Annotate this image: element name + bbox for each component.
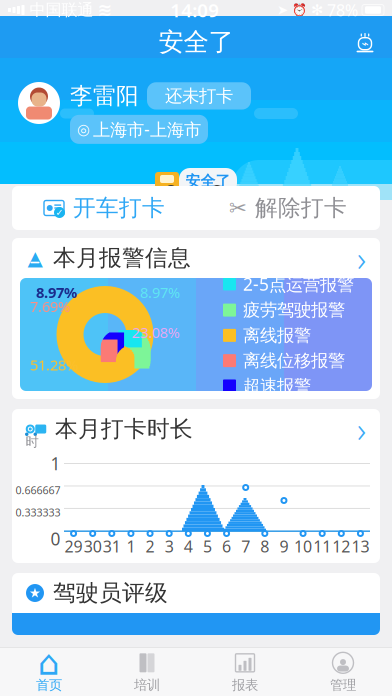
staticText: 驾驶员评级 [53, 579, 168, 607]
staticText: ⌂ [38, 643, 60, 682]
staticText: 0.333333 [15, 505, 60, 519]
staticText: 上海市-上海市 [93, 118, 201, 141]
staticText: 管理 [330, 677, 356, 693]
staticText: 0.666667 [15, 483, 60, 497]
staticText: 8 [260, 536, 269, 557]
staticText: 10 [294, 536, 312, 557]
staticText: ✓ [55, 207, 63, 218]
staticText: 2 [146, 536, 155, 557]
staticText: 14:09 [170, 0, 219, 22]
button[interactable]: ✂ [196, 186, 380, 230]
staticText: ◎ [77, 121, 90, 138]
staticText: 8.97% [140, 282, 180, 302]
staticText: 13 [351, 536, 369, 557]
button[interactable]: ✓ [12, 186, 196, 230]
staticText: › [357, 235, 366, 281]
staticText: ⌁ [361, 37, 368, 50]
staticText: 5 [203, 536, 212, 557]
staticText: 安全了 [185, 172, 230, 190]
staticText: 中国联通 [29, 0, 93, 20]
staticText: 解除打卡 [255, 194, 347, 222]
staticText: 报表 [232, 677, 258, 693]
staticText: 时 [25, 434, 38, 450]
button[interactable]: 管理 [294, 648, 392, 696]
staticText: 疲劳驾驶报警 [243, 299, 345, 321]
staticText: › [357, 406, 366, 452]
staticText: 开车打卡 [73, 194, 165, 222]
staticText: 4 [184, 536, 193, 557]
staticText: 11 [313, 536, 331, 557]
staticText: ➤ [277, 2, 288, 17]
button[interactable]: 报表 [196, 648, 294, 696]
staticText: ✻ [311, 2, 323, 18]
staticText: 3 [165, 536, 174, 557]
staticText: 8.97% [36, 282, 77, 302]
staticText: 7.69% [30, 296, 70, 316]
staticText: 51.28% [30, 355, 78, 374]
staticText: 31 [103, 536, 121, 557]
staticText: 本月报警信息 [53, 244, 191, 272]
staticText: 2-5点运营报警 [243, 272, 354, 295]
staticText: 培训 [134, 677, 160, 693]
staticText: 78% [327, 0, 358, 21]
staticText: 6 [222, 536, 231, 557]
staticText: 12 [332, 536, 350, 557]
staticText: 29 [65, 536, 83, 557]
button[interactable]: ▲ [12, 238, 380, 278]
staticText: 还未打卡 [165, 85, 233, 107]
staticText: 7 [241, 536, 250, 557]
staticText: 1 [126, 536, 135, 557]
button[interactable]: 本月打卡时长 [12, 409, 380, 449]
staticText: ✂ [229, 196, 247, 220]
button[interactable]: 培训 [98, 648, 196, 696]
staticText: 23.08% [132, 322, 180, 342]
button[interactable]: ★ [12, 573, 380, 613]
staticText: ⏰ [292, 3, 307, 17]
staticText: 首页 [36, 677, 62, 693]
staticText: 超速报警 [243, 375, 311, 397]
staticText: 0 [50, 527, 60, 550]
staticText: 1 [50, 452, 60, 475]
staticText: 李雷阳 [70, 82, 139, 110]
staticText: 离线报警 [243, 325, 311, 346]
staticText: 9 [279, 536, 288, 557]
staticText: 本月打卡时长 [55, 415, 193, 443]
button[interactable]: ⌂ [0, 648, 98, 696]
staticText: 离线位移报警 [243, 350, 345, 371]
staticText: 30 [84, 536, 102, 557]
staticText: ★ [29, 585, 41, 600]
staticText: ▲ [27, 247, 42, 269]
button[interactable]: 报警 [348, 25, 382, 59]
staticText: 安全了 [158, 26, 233, 57]
staticText: ≋ [97, 0, 112, 20]
